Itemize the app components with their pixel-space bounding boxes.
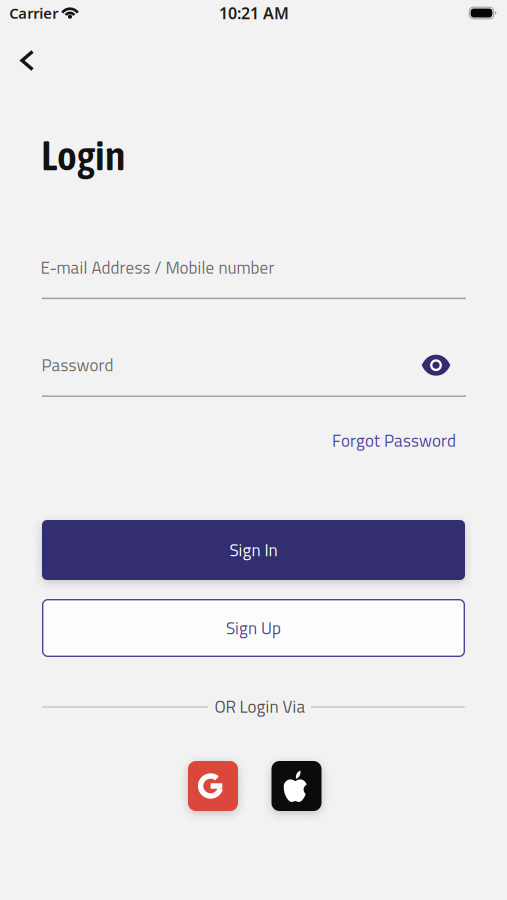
button[interactable]: Sign Up [42, 599, 465, 657]
staticText: Sign In [229, 537, 277, 563]
button[interactable]: Login with Google [188, 761, 238, 811]
button[interactable]: Show password [415, 348, 456, 382]
staticText: Login [41, 131, 125, 179]
button[interactable]: Sign In [42, 520, 465, 580]
staticText: 10:21 AM [219, 2, 289, 24]
staticText: OR Login Via [214, 694, 305, 719]
button[interactable]: Login with Apple [271, 761, 321, 811]
staticText: E-mail Address / Mobile number [40, 255, 274, 280]
button[interactable]: Forgot Password [328, 424, 460, 457]
staticText: Forgot Password [332, 428, 456, 453]
staticText: Password [41, 352, 113, 378]
staticText: Sign Up [226, 615, 281, 641]
button[interactable]: Back [9, 39, 46, 81]
staticText: Carrier [9, 3, 58, 23]
